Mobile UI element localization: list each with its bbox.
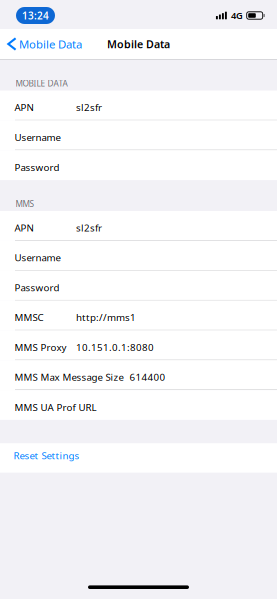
staticText: 614400 <box>129 370 165 384</box>
staticText: APN <box>15 221 34 234</box>
staticText: sl2sfr <box>76 101 102 114</box>
staticText: 13:24 <box>22 9 49 22</box>
staticText: MOBILE DATA <box>15 78 67 89</box>
button[interactable]: MMSC <box>0 301 277 330</box>
button[interactable]: Username <box>0 241 277 271</box>
button[interactable]: MMS UA Prof URL <box>0 390 277 420</box>
staticText: Mobile Data <box>107 37 170 51</box>
staticText: Reset Settings <box>14 449 80 462</box>
staticText: 4G <box>231 9 243 22</box>
staticText: MMSC <box>15 311 44 324</box>
staticText: Username <box>15 130 61 144</box>
button[interactable]: Password <box>0 150 277 180</box>
staticText: APN <box>15 101 34 114</box>
button[interactable]: APN <box>0 90 277 120</box>
staticText: Mobile Data <box>19 36 82 52</box>
staticText: http://mms1 <box>76 311 136 324</box>
staticText: 10.151.0.1:8080 <box>76 340 154 354</box>
button[interactable]: Username <box>0 120 277 150</box>
button[interactable]: MMS Max Message Size <box>0 360 277 390</box>
staticText: MMS Proxy <box>15 340 67 354</box>
staticText: Username <box>15 251 61 264</box>
button[interactable]: APN <box>0 211 277 241</box>
button[interactable]: Mobile Data <box>0 29 88 59</box>
button[interactable]: Reset Settings <box>0 443 277 473</box>
staticText: Password <box>15 161 60 174</box>
staticText: MMS Max Message Size <box>15 370 124 384</box>
button[interactable]: MMS Proxy <box>0 330 277 360</box>
button[interactable]: Password <box>0 271 277 301</box>
staticText: MMS UA Prof URL <box>15 400 97 414</box>
staticText: sl2sfr <box>76 221 102 234</box>
staticText: MMS <box>15 198 34 209</box>
staticText: Password <box>15 281 60 294</box>
